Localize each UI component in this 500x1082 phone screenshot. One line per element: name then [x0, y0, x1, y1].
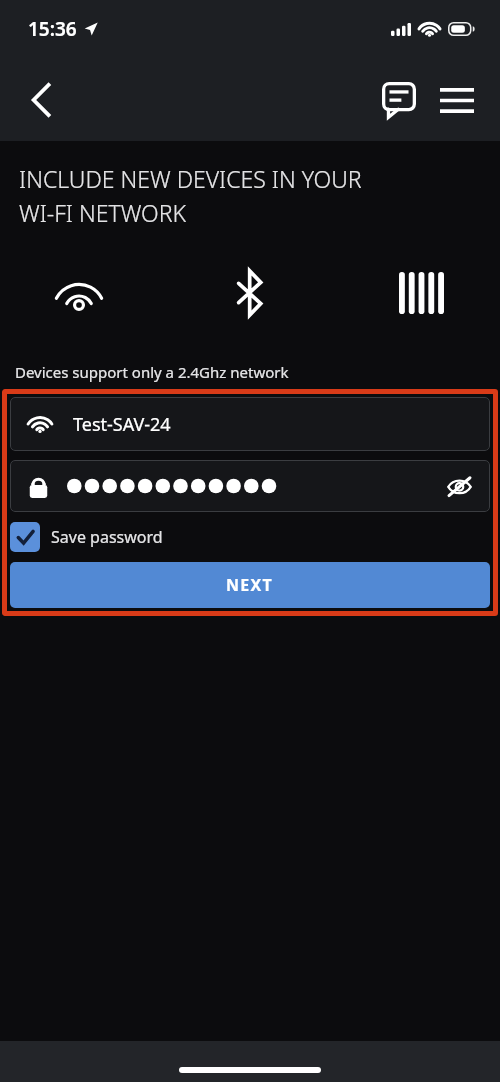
staticText: Save password — [51, 526, 163, 548]
button[interactable]: Messages — [372, 73, 426, 127]
staticText: INCLUDE NEW DEVICES IN YOUR WI-FI NETWOR… — [19, 163, 362, 228]
button[interactable]: Menu — [430, 73, 484, 127]
staticText: Test-SAV-24 — [73, 412, 171, 437]
staticText: 15:36 — [28, 16, 77, 42]
button[interactable]: Back — [12, 71, 70, 129]
button[interactable]: Wi-Fi setup — [42, 256, 116, 330]
button[interactable]: Bluetooth setup — [213, 256, 287, 330]
button[interactable]: Show password — [10, 460, 490, 512]
button[interactable]: Save password — [10, 520, 490, 554]
staticText: NEXT — [226, 574, 274, 596]
staticText: Devices support only a 2.4Ghz network — [15, 362, 289, 382]
button[interactable]: Scan barcode — [384, 256, 458, 330]
button[interactable]: Show password — [442, 469, 476, 503]
button[interactable]: Test-SAV-24 — [10, 397, 490, 451]
button[interactable]: NEXT — [10, 562, 490, 608]
